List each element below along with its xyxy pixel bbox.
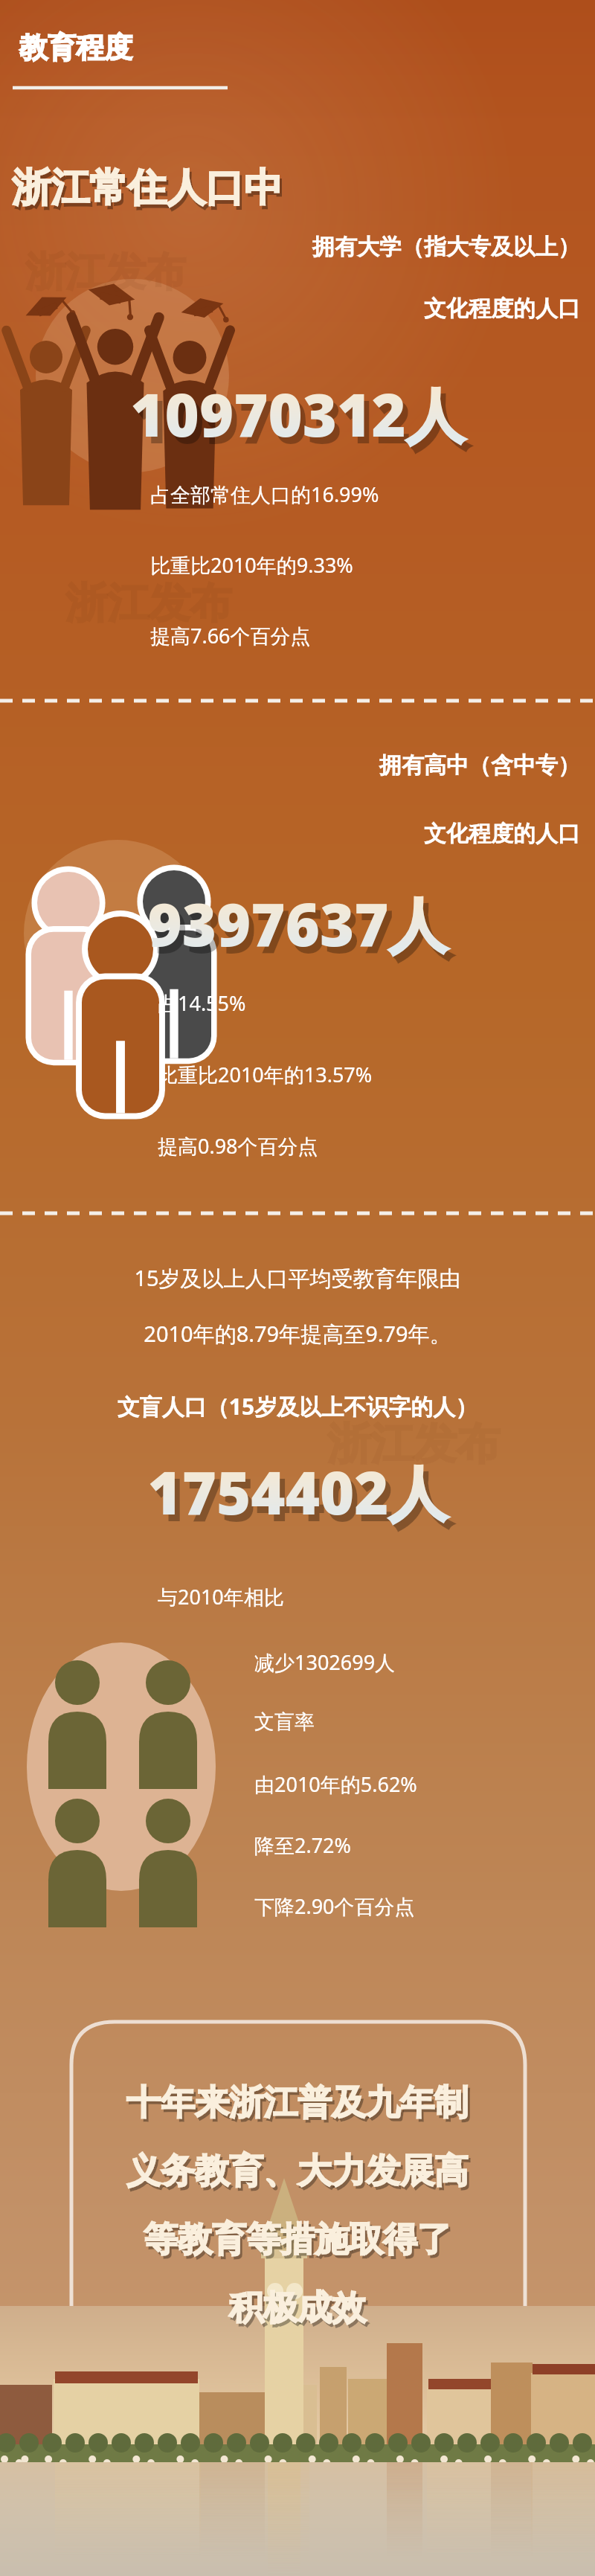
staticText: 降至2.72%: [254, 1831, 582, 1859]
staticText: 与2010年相比: [158, 1583, 589, 1610]
staticText: 1754402人: [5, 1459, 595, 1539]
staticText: 9397637人: [5, 890, 595, 971]
staticText: 十年来浙江普及九年制: [74, 2081, 521, 2124]
staticText: 减少1302699人: [254, 1648, 582, 1676]
staticText: 提高7.66个百分点: [150, 622, 582, 649]
staticText: 浙江发布: [65, 577, 311, 630]
staticText: 比重比2010年的13.57%: [158, 1061, 589, 1088]
staticText: 拥有大学（指大专及以上）: [112, 233, 580, 261]
staticText: 文盲率: [254, 1709, 582, 1735]
staticText: 由2010年的5.62%: [254, 1770, 582, 1798]
staticText: 等教育等措施取得了: [77, 2221, 523, 2264]
staticText: 15岁及以上人口平均受教育年限由: [45, 1263, 550, 1293]
staticText: 1754402人: [0, 1452, 595, 1532]
staticText: 文盲人口（15岁及以上不识字的人）: [45, 1391, 550, 1422]
staticText: 10970312人: [0, 374, 595, 455]
staticText: 浙江常住人口中: [14, 167, 364, 216]
staticText: 浙江发布: [25, 247, 263, 298]
staticText: 2010年的8.79年提高至9.79年。: [45, 1319, 550, 1349]
button[interactable]: 教育程度: [0, 0, 245, 36]
staticText: 积极成效: [77, 2290, 523, 2333]
staticText: 教育程度: [19, 30, 242, 65]
staticText: 提高0.98个百分点: [158, 1132, 589, 1160]
staticText: 浙江常住人口中: [12, 164, 361, 213]
staticText: 义务教育、大力发展高: [74, 2150, 521, 2193]
staticText: 文化程度的人口: [112, 820, 580, 848]
staticText: 浙江发布: [327, 1417, 580, 1471]
staticText: 下降2.90个百分点: [254, 1892, 582, 1920]
staticText: 比重比2010年的9.33%: [150, 551, 582, 579]
staticText: 文化程度的人口: [112, 295, 580, 323]
staticText: 积极成效: [74, 2287, 521, 2330]
staticText: 9397637人: [0, 884, 595, 964]
staticText: 占全部常住人口的16.99%: [150, 481, 582, 508]
staticText: 十年来浙江普及九年制: [77, 2084, 523, 2127]
staticText: 拥有高中（含中专）: [112, 751, 580, 780]
staticText: 占14.55%: [158, 989, 589, 1017]
staticText: 10970312人: [5, 381, 595, 461]
staticText: 义务教育、大力发展高: [77, 2153, 523, 2196]
staticText: 等教育等措施取得了: [74, 2218, 521, 2261]
